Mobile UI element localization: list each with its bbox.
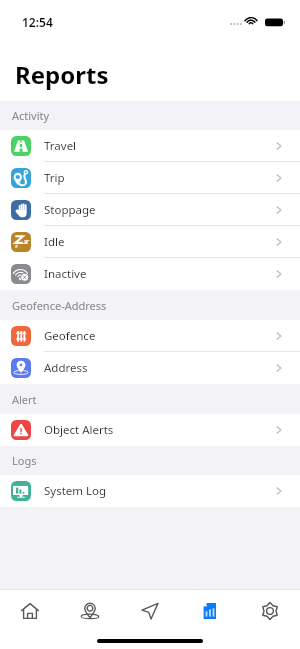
staticText: Activity [12, 108, 50, 123]
staticText: Logs [12, 453, 37, 468]
staticText: Geofence-Address [12, 298, 107, 313]
button[interactable]: System Log [0, 475, 300, 507]
staticText: Inactive [44, 266, 87, 282]
staticText: Alert [12, 392, 37, 407]
button[interactable]: Settings [240, 590, 300, 631]
button[interactable]: Trip [0, 162, 300, 194]
button[interactable]: Navigate [120, 590, 180, 631]
button[interactable]: Places [60, 590, 120, 631]
button[interactable]: Home [0, 590, 60, 631]
staticText: Address [44, 360, 88, 376]
staticText: System Log [44, 483, 107, 499]
staticText: Reports [15, 58, 109, 91]
button[interactable]: Address [0, 352, 300, 384]
staticText: Trip [44, 170, 65, 186]
button[interactable]: Geofence [0, 320, 300, 352]
button[interactable]: Stoppage [0, 194, 300, 226]
button[interactable]: Travel [0, 130, 300, 162]
button[interactable]: Idle [0, 226, 300, 258]
staticText: Geofence [44, 328, 96, 344]
staticText: Idle [44, 234, 65, 250]
button[interactable]: Object Alerts [0, 414, 300, 446]
staticText: Object Alerts [44, 422, 114, 438]
staticText: 12:54 [22, 14, 53, 30]
staticText: Stoppage [44, 202, 96, 218]
staticText: Travel [44, 138, 77, 154]
button[interactable]: Reports [180, 590, 240, 631]
button[interactable]: Inactive [0, 258, 300, 290]
